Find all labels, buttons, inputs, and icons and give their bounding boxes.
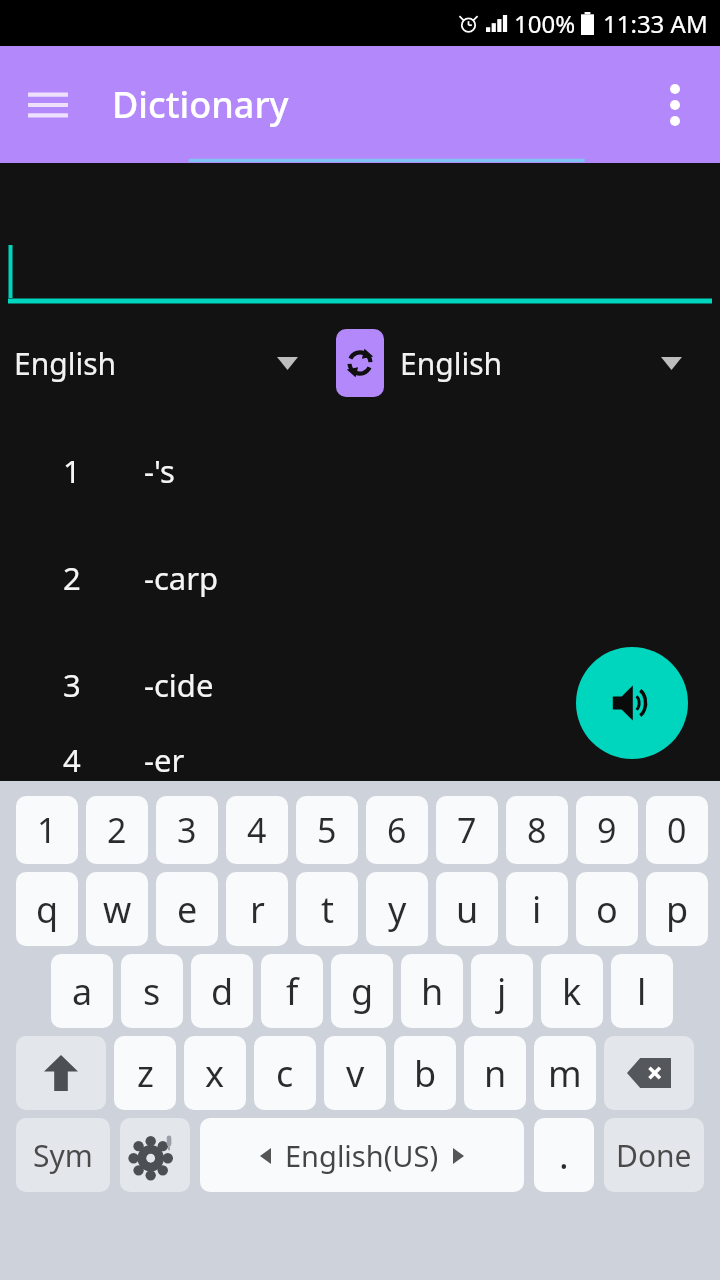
button[interactable]: 4 [226,796,288,864]
button[interactable]: 8 [506,796,568,864]
staticText: 4 [247,807,267,853]
staticText: 4 [63,739,81,781]
button[interactable]: Done [604,1118,704,1192]
staticText: f [286,967,299,1016]
staticText: . [559,1131,569,1180]
staticText: h [421,967,444,1016]
staticText: c [276,1049,294,1098]
staticText: e [177,885,198,934]
button[interactable]: Keyboard settings [120,1118,190,1192]
staticText: o [596,885,618,934]
staticText: q [36,885,59,934]
button[interactable]: e [156,872,218,946]
staticText: l [637,967,647,1016]
staticText: 2 [63,557,81,599]
button[interactable]: 2 [0,524,720,631]
staticText: z [137,1049,154,1098]
staticText: 1 [37,807,57,853]
button[interactable]: English [0,309,336,417]
staticText: k [562,967,582,1016]
button[interactable]: 9 [576,796,638,864]
button[interactable]: w [86,872,148,946]
button[interactable]: y [366,872,428,946]
button[interactable]: x [184,1036,246,1110]
staticText: English [14,343,117,384]
button[interactable]: More options [642,72,708,138]
button[interactable]: 3 [156,796,218,864]
button[interactable]: l [611,954,673,1028]
button[interactable]: Swap languages [336,329,384,397]
button[interactable]: Shift [16,1036,106,1110]
button[interactable]: 5 [296,796,358,864]
button[interactable]: . [534,1118,594,1192]
button[interactable]: English(US) [200,1118,524,1192]
button[interactable]: a [51,954,113,1028]
staticText: y [388,885,407,934]
button[interactable]: v [324,1036,386,1110]
staticText: English [400,343,503,384]
staticText: 9 [597,807,617,853]
staticText: a [72,967,93,1016]
button[interactable]: 3 [0,631,720,738]
staticText: -'s [144,450,175,492]
button[interactable]: m [534,1036,596,1110]
button[interactable]: j [471,954,533,1028]
staticText: 3 [63,664,81,706]
staticText: 8 [527,807,547,853]
staticText: v [346,1049,365,1098]
staticText: g [351,967,374,1016]
staticText: Sym [33,1135,93,1176]
staticText: m [548,1049,582,1098]
button[interactable]: Sym [16,1118,110,1192]
button[interactable]: b [394,1036,456,1110]
staticText: j [497,967,507,1016]
button[interactable]: o [576,872,638,946]
button[interactable]: 1 [0,417,720,524]
button[interactable]: d [191,954,253,1028]
staticText: 100% [514,7,576,40]
staticText: p [666,885,689,934]
staticText: 2 [107,807,127,853]
staticText: 5 [317,807,337,853]
button[interactable]: h [401,954,463,1028]
button[interactable]: f [261,954,323,1028]
staticText: 0 [667,807,687,853]
button[interactable]: Search word [0,199,720,309]
button[interactable]: Speak word [576,647,688,759]
staticText: w [103,885,132,934]
button[interactable]: 0 [646,796,708,864]
staticText: r [250,885,265,934]
button[interactable]: 2 [86,796,148,864]
staticText: -er [144,739,185,781]
button[interactable]: z [114,1036,176,1110]
button[interactable]: Backspace [604,1036,694,1110]
button[interactable]: r [226,872,288,946]
button[interactable]: 6 [366,796,428,864]
button[interactable]: i [506,872,568,946]
button[interactable]: 7 [436,796,498,864]
staticText: 7 [457,807,477,853]
staticText: s [143,967,161,1016]
staticText: -carp [144,557,219,599]
button[interactable]: n [464,1036,526,1110]
button[interactable]: u [436,872,498,946]
button[interactable]: English [384,309,720,417]
staticText: 6 [387,807,407,853]
button[interactable]: q [16,872,78,946]
button[interactable]: Open navigation drawer [14,71,82,139]
button[interactable]: c [254,1036,316,1110]
button[interactable]: t [296,872,358,946]
staticText: d [211,967,234,1016]
staticText: n [484,1049,507,1098]
staticText: 1 [63,450,81,492]
button[interactable]: s [121,954,183,1028]
button[interactable]: 4 [0,738,720,781]
staticText: 3 [177,807,197,853]
staticText: b [414,1049,437,1098]
button[interactable]: 1 [16,796,78,864]
staticText: -cide [144,664,214,706]
button[interactable]: g [331,954,393,1028]
button[interactable]: k [541,954,603,1028]
staticText: Dictionary [112,80,289,129]
button[interactable]: p [646,872,708,946]
